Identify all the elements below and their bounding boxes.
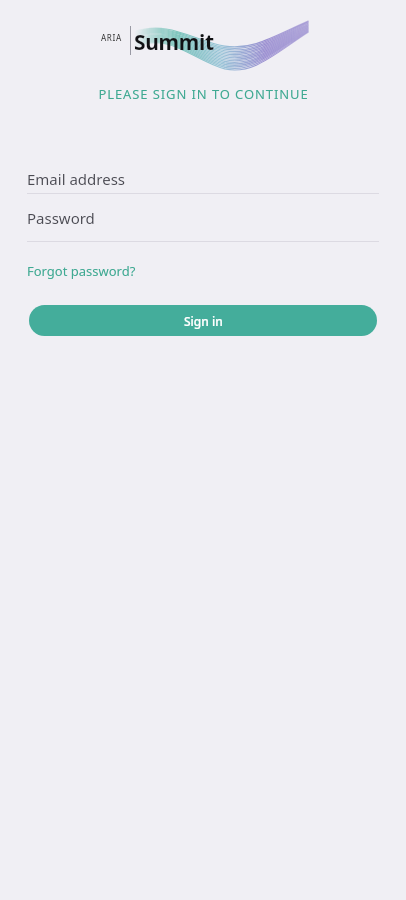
button[interactable]: Forgot password? <box>27 260 136 282</box>
staticText: Email address <box>27 169 126 189</box>
button[interactable]: Password <box>27 194 379 242</box>
staticText: Sign in <box>184 313 223 329</box>
staticText: PLEASE SIGN IN TO CONTINUE <box>98 85 309 103</box>
button[interactable]: Sign in <box>29 305 377 336</box>
staticText: Forgot password? <box>27 262 136 280</box>
staticText: Summit <box>134 28 214 57</box>
staticText: Password <box>27 208 95 228</box>
button[interactable]: Email address <box>27 164 379 194</box>
staticText: ARIA <box>101 32 122 43</box>
